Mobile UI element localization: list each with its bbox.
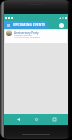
button[interactable]: Recent apps [51,116,58,123]
staticText: Anniversary Party [14,31,39,35]
button[interactable]: Anniversary Party [5,30,67,43]
button[interactable]: Back [15,116,22,123]
staticText: 1234 Elm Street, Springfield [14,36,40,39]
staticText: UPCOMING EVENTS [13,23,46,27]
staticText: Saturday, 8:00 PM [14,34,32,37]
button[interactable]: Account [59,23,64,28]
button[interactable]: Open navigation drawer [5,22,11,28]
button[interactable]: Home [33,116,40,123]
